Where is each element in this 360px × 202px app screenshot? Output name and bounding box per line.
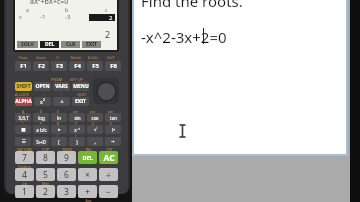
button[interactable]: OPTN [34, 82, 51, 91]
button[interactable]: + [78, 185, 97, 198]
button[interactable]: Directional pad [93, 78, 119, 104]
button[interactable]: 7 [15, 151, 34, 164]
staticText: 5 [43, 169, 48, 181]
staticText: 2 [105, 28, 111, 40]
button[interactable]: tan [105, 113, 121, 122]
staticText [15, 133, 31, 138]
staticText [79, 181, 98, 186]
staticText: E [50, 109, 66, 114]
staticText: SHIFT [16, 83, 31, 90]
button[interactable]: ( [51, 137, 67, 146]
button[interactable]: ln [51, 113, 67, 122]
staticText: ∠ [33, 121, 49, 125]
button[interactable]: CLR [61, 41, 80, 48]
button[interactable]: ALPHA [15, 97, 32, 106]
staticText: tan [110, 115, 117, 121]
staticText: 9 [64, 152, 69, 164]
staticText: CLR [66, 41, 76, 48]
button[interactable]: 2 [36, 185, 55, 198]
button[interactable]: DEL [40, 41, 59, 48]
button[interactable]: 1 [15, 185, 34, 198]
button[interactable]: VARS [53, 82, 70, 91]
button[interactable]: EXIT [82, 41, 101, 48]
button[interactable]: ^ [53, 97, 70, 106]
button[interactable]: 3 [57, 185, 76, 198]
staticText [85, 133, 101, 138]
staticText: S⇔D [36, 139, 46, 145]
button[interactable]: EXIT [72, 97, 89, 106]
staticText: -1 [40, 13, 46, 21]
staticText [100, 164, 119, 169]
button[interactable]: cos [87, 113, 103, 122]
button[interactable]: SOLV [17, 41, 38, 48]
button[interactable]: a b/c [33, 125, 49, 134]
button[interactable]: l• [105, 125, 121, 134]
staticText [58, 164, 77, 169]
staticText: C [68, 121, 84, 126]
button[interactable]: ■ [15, 125, 31, 134]
button[interactable]: F2 [33, 61, 49, 71]
staticText: ) [76, 139, 78, 145]
button[interactable]: ) [69, 137, 85, 146]
staticText: x⁻¹ [74, 127, 80, 133]
button[interactable]: − [99, 185, 118, 198]
staticText: tan⁻ [103, 109, 119, 114]
button[interactable]: F5 [87, 61, 103, 71]
button[interactable]: MENU [72, 82, 89, 91]
button[interactable]: SHIFT [15, 82, 32, 91]
button[interactable]: x² [34, 97, 51, 106]
button[interactable]: DEL [78, 151, 97, 164]
button[interactable]: F3 [51, 61, 67, 71]
staticText: SET UP [70, 77, 84, 82]
staticText: Trace [15, 55, 31, 60]
button[interactable]: 5 [36, 168, 55, 181]
button[interactable]: × [78, 168, 97, 181]
button[interactable]: → [105, 137, 121, 146]
staticText: -3 [65, 13, 71, 21]
button[interactable]: log [33, 113, 49, 122]
button[interactable]: x⁻¹ [69, 125, 85, 134]
button[interactable]: 9 [57, 151, 76, 164]
staticText: l• [112, 127, 115, 133]
button[interactable] [134, 0, 348, 156]
button[interactable]: sin [69, 113, 85, 122]
button[interactable]: ÷ [99, 168, 118, 181]
staticText [103, 133, 119, 138]
button[interactable]: ☰ [15, 137, 31, 146]
staticText: log [38, 115, 45, 121]
staticText: D [33, 109, 49, 114]
button[interactable]: S⇔D [33, 137, 49, 146]
button[interactable] [15, 0, 117, 50]
button[interactable]: X,θ,T [15, 113, 31, 122]
staticText: Ans [79, 198, 98, 202]
staticText: { [50, 133, 66, 138]
staticText: List [15, 181, 34, 186]
button[interactable]: 8 [36, 151, 55, 164]
button[interactable]: , [87, 137, 103, 146]
staticText: ( [58, 139, 60, 145]
staticText: ln [57, 115, 61, 121]
staticText: CAPTURE [15, 147, 34, 152]
staticText: 3 [64, 186, 69, 198]
staticText: → [111, 139, 115, 144]
staticText: cos⁻ [85, 109, 101, 114]
staticText: 6 [64, 169, 69, 181]
staticText: G↔T [103, 55, 119, 60]
staticText: I• [103, 121, 119, 126]
button[interactable]: 4 [15, 168, 34, 181]
button[interactable]: √ [87, 125, 103, 134]
staticText: 8 [43, 152, 48, 164]
button[interactable]: F1 [15, 61, 31, 71]
staticText: ³√ [59, 92, 63, 97]
staticText: , [94, 139, 96, 145]
staticText: } [68, 133, 84, 138]
button[interactable]: 6 [57, 168, 76, 181]
button[interactable]: ▸ [51, 125, 67, 134]
button[interactable]: F4 [69, 61, 85, 71]
button[interactable]: F6 [105, 61, 121, 71]
staticText: ☰ [21, 139, 26, 144]
staticText: sin⁻ [68, 109, 84, 114]
button[interactable]: AC [99, 151, 118, 164]
